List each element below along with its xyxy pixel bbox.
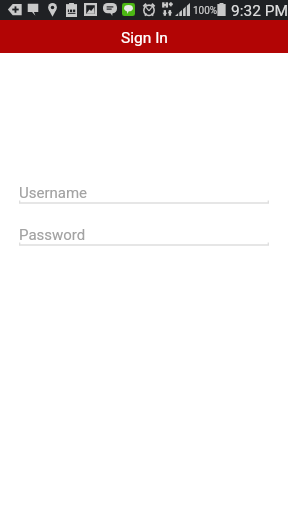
staticText: Username	[19, 184, 88, 202]
button[interactable]: Password	[19, 223, 269, 249]
button[interactable]: Username	[19, 181, 269, 207]
staticText: Password	[19, 226, 86, 244]
staticText: 100%	[193, 5, 218, 17]
staticText: 9:32 PM	[231, 2, 288, 20]
staticText: Sign In	[121, 29, 168, 47]
